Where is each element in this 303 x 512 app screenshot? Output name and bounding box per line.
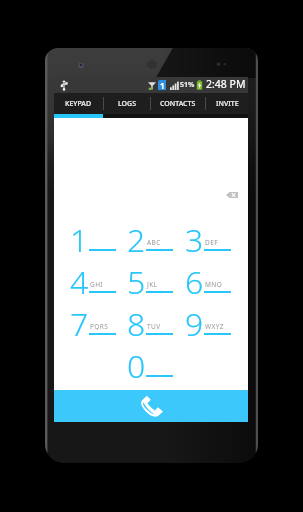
- button[interactable]: Call: [54, 390, 248, 422]
- staticText: 6: [185, 260, 204, 296]
- button[interactable]: CONTACTS: [151, 93, 205, 114]
- staticText: 7: [70, 302, 89, 338]
- button[interactable]: LOGS: [104, 93, 150, 114]
- staticText: INVITE: [216, 99, 239, 109]
- staticText: 2:48 PM: [206, 77, 246, 91]
- button[interactable]: 1: [63, 224, 119, 260]
- button[interactable]: 9: [178, 308, 234, 344]
- staticText: DEF: [205, 238, 218, 247]
- staticText: GHI: [90, 280, 103, 289]
- button[interactable]: 6: [178, 266, 234, 302]
- staticText: 1: [160, 80, 165, 90]
- button[interactable]: 3: [178, 224, 234, 260]
- staticText: 5: [127, 260, 146, 296]
- staticText: 4: [70, 260, 89, 296]
- button[interactable]: 2: [120, 224, 176, 260]
- staticText: 51%: [180, 80, 195, 90]
- button[interactable]: INVITE: [206, 93, 248, 114]
- staticText: CONTACTS: [160, 99, 196, 109]
- button[interactable]: 8: [120, 308, 176, 344]
- staticText: TUV: [147, 322, 161, 331]
- staticText: PQRS: [90, 322, 109, 331]
- staticText: MNO: [205, 280, 223, 289]
- staticText: 2: [127, 218, 146, 254]
- staticText: 8: [127, 302, 146, 338]
- button[interactable]: KEYPAD: [54, 93, 103, 114]
- staticText: LOGS: [118, 99, 137, 109]
- button[interactable]: 7: [63, 308, 119, 344]
- staticText: 0: [127, 344, 146, 380]
- button[interactable]: 5: [120, 266, 176, 302]
- staticText: ABC: [147, 238, 161, 247]
- staticText: 1: [70, 218, 89, 254]
- staticText: 3: [185, 218, 204, 254]
- staticText: JKL: [147, 280, 158, 289]
- staticText: WXYZ: [205, 322, 224, 331]
- button[interactable]: 0: [120, 350, 176, 386]
- button[interactable]: 4: [63, 266, 119, 302]
- staticText: 9: [185, 302, 204, 338]
- staticText: KEYPAD: [65, 99, 92, 109]
- button[interactable]: Backspace: [221, 187, 243, 203]
